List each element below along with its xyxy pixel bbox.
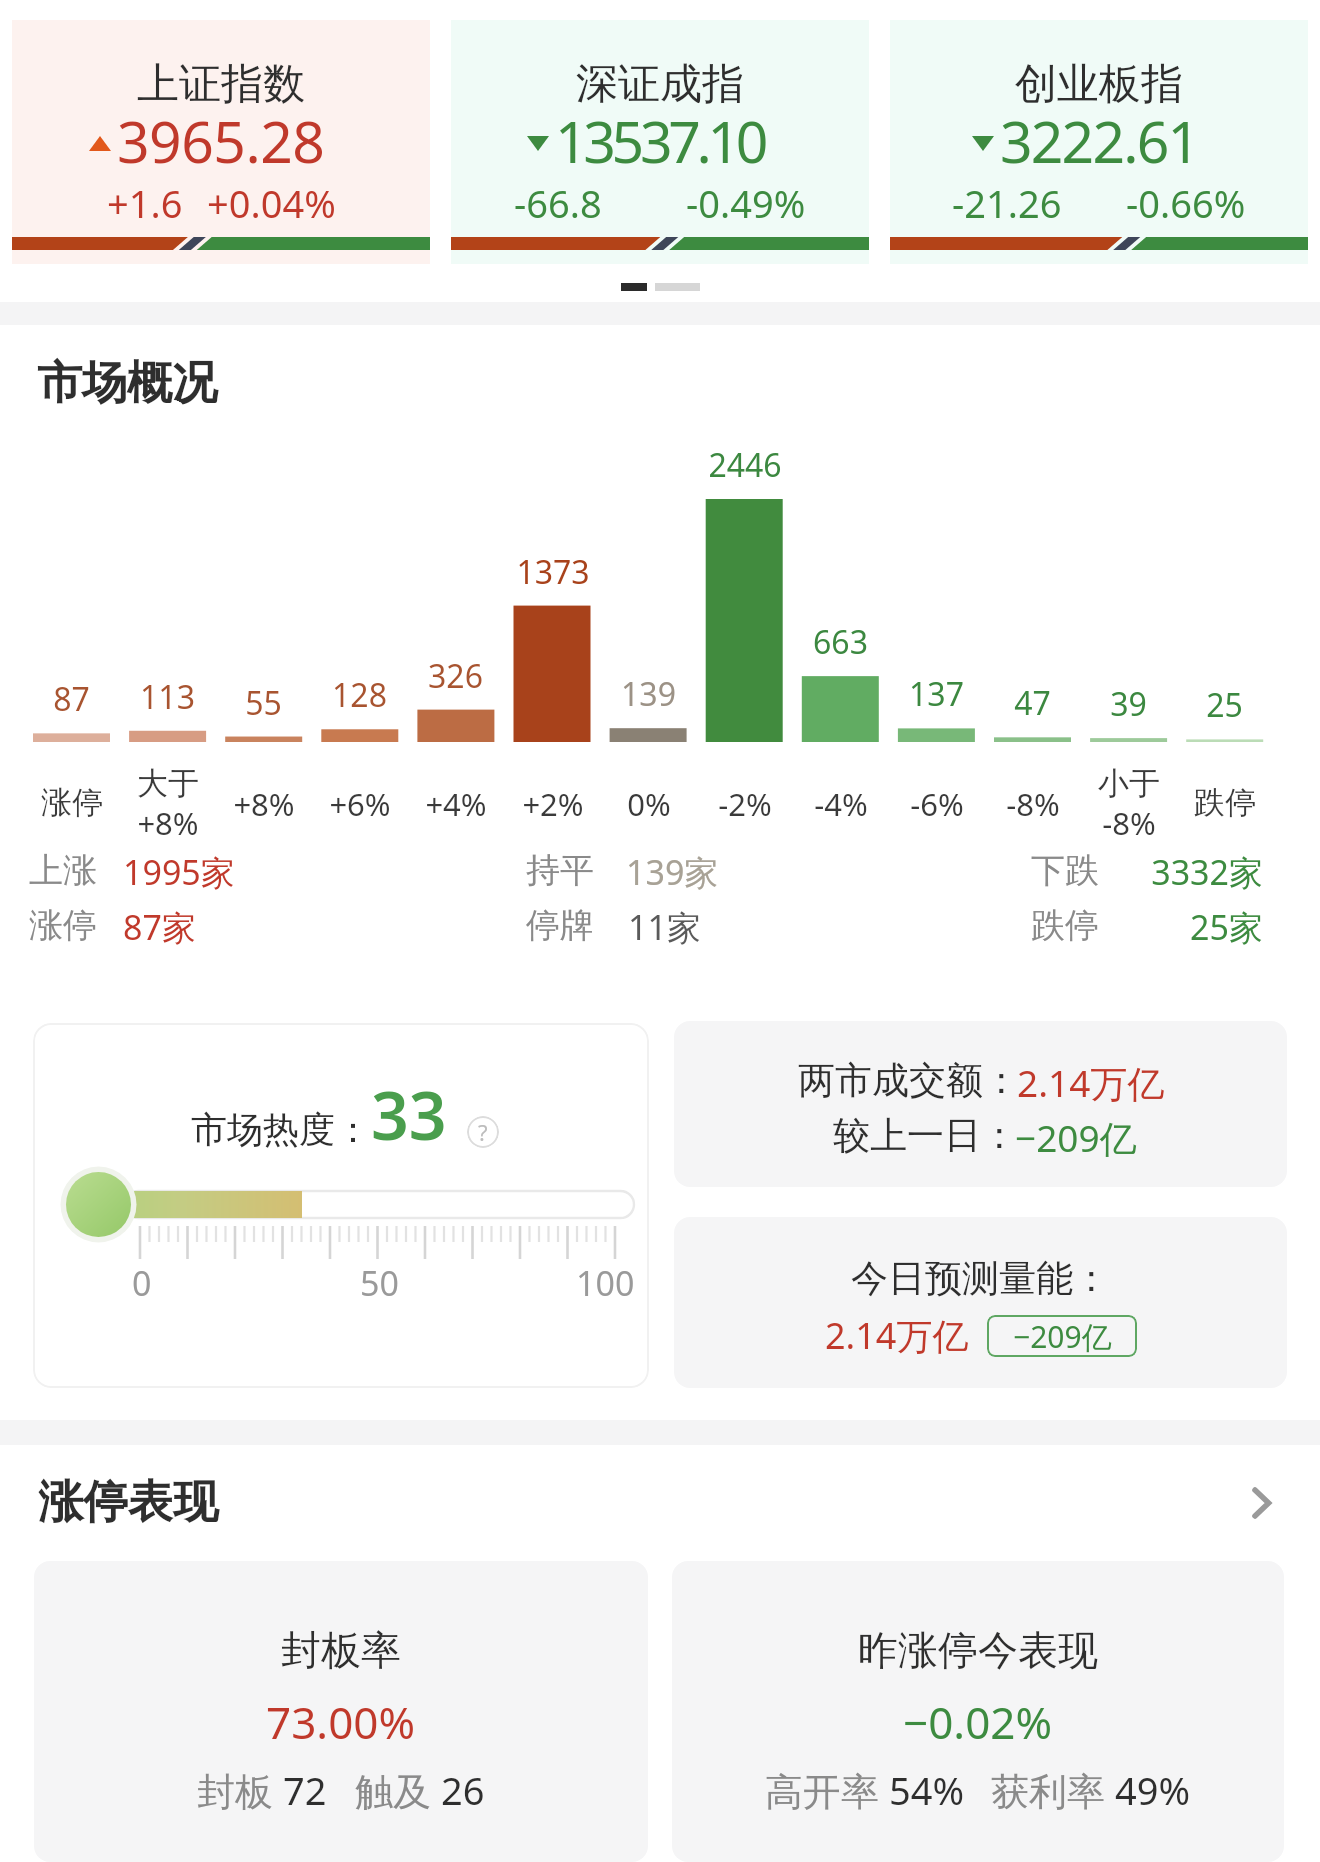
button[interactable]: 涨停表现 — [38, 1474, 1273, 1531]
staticText: -0.66% — [1126, 177, 1246, 229]
staticText: +4% — [425, 783, 487, 825]
staticText: +1.6 — [107, 177, 183, 229]
staticText: 87 — [53, 677, 90, 721]
button[interactable]: 昨涨停今表现 — [672, 1561, 1284, 1862]
staticText: 下跌 — [1031, 849, 1099, 892]
button[interactable]: 深证成指 — [451, 20, 869, 264]
staticText: 2.14万亿 — [825, 1311, 969, 1360]
staticText: 昨涨停今表现 — [858, 1625, 1098, 1675]
staticText: 55 — [245, 681, 282, 725]
staticText: 深证成指 — [576, 58, 744, 111]
button[interactable]: 今日预测量能： — [674, 1217, 1287, 1388]
staticText: 3222.61 — [1000, 102, 1199, 180]
staticText: 25家 — [1190, 904, 1263, 950]
staticText: 13537.10 — [555, 102, 765, 180]
staticText: -2% — [718, 783, 772, 825]
staticText: 139家 — [626, 849, 719, 895]
staticText: 663 — [813, 620, 868, 664]
staticText: 跌停 — [1194, 783, 1256, 822]
staticText: 持平 — [526, 849, 594, 892]
staticText: 创业板指 — [1015, 58, 1183, 111]
staticText: 128 — [332, 673, 387, 717]
staticText: 跌停 — [1031, 904, 1099, 947]
staticText: 139 — [621, 672, 676, 716]
staticText: 49% — [1115, 1764, 1191, 1816]
staticText: −0.02% — [903, 1692, 1053, 1752]
button[interactable]: 创业板指 — [890, 20, 1308, 264]
staticText: 3965.28 — [117, 102, 325, 180]
staticText: 停牌 — [526, 904, 594, 947]
staticText: 封板 — [197, 1764, 283, 1816]
staticText: 涨停表现 — [38, 1474, 218, 1531]
staticText: 上证指数 — [137, 58, 305, 111]
staticText: 2446 — [708, 443, 782, 487]
staticText: 326 — [428, 654, 483, 698]
staticText: 50 — [360, 1260, 399, 1306]
staticText: 上涨 — [29, 849, 97, 892]
staticText: 3332家 — [1151, 849, 1263, 895]
staticText: 1373 — [516, 550, 590, 594]
staticText: 触及 — [355, 1764, 441, 1816]
staticText: 两市成交额： — [798, 1057, 1020, 1104]
staticText: 39 — [1110, 682, 1147, 726]
staticText: 封板率 — [281, 1625, 401, 1675]
staticText: +6% — [329, 783, 391, 825]
button[interactable]: 两市成交额： — [674, 1021, 1287, 1187]
button[interactable]: 市场概况 — [0, 340, 1320, 410]
staticText: 26 — [441, 1764, 485, 1816]
button[interactable]: 市场热度： — [33, 1023, 649, 1388]
staticText: 47 — [1014, 681, 1051, 725]
button[interactable]: 说明 — [467, 1116, 499, 1148]
staticText: 较上一日： — [833, 1112, 1018, 1159]
staticText: 0 — [132, 1260, 152, 1306]
button[interactable]: 上证指数 — [12, 20, 430, 264]
staticText: 33 — [371, 1069, 447, 1159]
staticText: 大于 +8% — [137, 764, 199, 844]
staticText: +8% — [233, 783, 295, 825]
staticText: 涨停 — [29, 904, 97, 947]
staticText: 市场热度： — [191, 1107, 371, 1152]
staticText: −209亿 — [1015, 1112, 1137, 1163]
staticText: -4% — [814, 783, 868, 825]
staticText: 2.14万亿 — [1017, 1057, 1165, 1108]
staticText: 涨停 — [41, 783, 103, 822]
other: 更多 — [1251, 1485, 1273, 1521]
staticText: 113 — [140, 675, 195, 719]
staticText: 87家 — [123, 904, 196, 950]
button[interactable] — [0, 420, 1320, 990]
button[interactable]: 封板率 — [34, 1561, 648, 1862]
staticText: +2% — [522, 783, 584, 825]
staticText: 高开率 — [765, 1764, 889, 1816]
staticText: 1995家 — [123, 849, 235, 895]
staticText: 100 — [576, 1260, 635, 1306]
staticText: -21.26 — [952, 177, 1062, 229]
staticText: −209亿 — [1013, 1316, 1112, 1357]
staticText: 获利率 — [991, 1764, 1115, 1816]
staticText: 0% — [627, 783, 671, 825]
staticText: 25 — [1206, 683, 1243, 727]
staticText: 72 — [283, 1764, 327, 1816]
staticText: 54% — [889, 1764, 965, 1816]
staticText: 今日预测量能： — [851, 1255, 1110, 1302]
staticText: 137 — [909, 672, 964, 716]
staticText: 11家 — [628, 904, 701, 950]
staticText: -0.49% — [686, 177, 806, 229]
staticText: -6% — [910, 783, 964, 825]
staticText: +0.04% — [207, 177, 336, 229]
staticText: 小于 -8% — [1098, 764, 1160, 844]
staticText: 市场概况 — [37, 355, 217, 412]
staticText: -8% — [1006, 783, 1060, 825]
staticText: -66.8 — [514, 177, 602, 229]
staticText: 73.00% — [266, 1692, 416, 1752]
staticText: ? — [478, 1117, 488, 1147]
